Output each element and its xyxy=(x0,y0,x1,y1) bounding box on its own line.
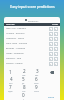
staticText: 8 xyxy=(23,84,26,90)
staticText: 1 xyxy=(50,33,52,36)
staticText: 1 xyxy=(55,48,57,51)
button[interactable]: Man Utd - Chelsea xyxy=(4,26,60,31)
staticText: Man Utd - Chelsea xyxy=(6,27,26,30)
button[interactable]: 9 xyxy=(30,84,43,92)
button[interactable]: 1 xyxy=(54,52,58,56)
button[interactable]: 2 xyxy=(17,68,30,76)
button[interactable]: Done xyxy=(43,92,60,100)
staticText: Easy input score predictions xyxy=(10,4,55,9)
staticText: 1 xyxy=(50,63,52,66)
staticText: 1 xyxy=(55,33,57,36)
button[interactable]: Watford - Villa xyxy=(4,56,60,61)
button[interactable]: Arsenal - Everton xyxy=(4,31,60,36)
staticText: Round 21 xyxy=(28,19,39,22)
staticText: 1 xyxy=(50,28,52,31)
button[interactable]: 1 xyxy=(4,68,17,76)
staticText: TUV xyxy=(22,90,26,92)
button[interactable]: Leeds - Brighton xyxy=(4,51,60,56)
button[interactable]: Backspace xyxy=(43,68,60,76)
button[interactable]: 1 xyxy=(49,62,53,66)
staticText: 1 xyxy=(50,43,52,46)
button[interactable]: 1 xyxy=(49,52,53,56)
staticText: 9 xyxy=(35,84,38,90)
staticText: Leeds - Brighton xyxy=(6,52,24,55)
staticText: 1 xyxy=(50,58,52,61)
button[interactable]: West Ham - Fulham xyxy=(4,41,60,46)
button[interactable]: 1 xyxy=(54,57,58,61)
staticText: 3 xyxy=(36,68,39,74)
staticText: West Ham - Fulham xyxy=(6,42,28,45)
staticText: + xyxy=(23,98,25,100)
staticText: 1 xyxy=(50,53,52,56)
staticText: DEF xyxy=(35,74,39,76)
button[interactable]: 1 xyxy=(54,47,58,51)
button[interactable]: Wolves - Palace xyxy=(4,61,60,66)
staticText: 1 xyxy=(55,53,57,56)
staticText: SCORE xyxy=(52,23,58,26)
button[interactable]: 7 xyxy=(4,84,17,92)
staticText: 1 xyxy=(55,28,57,31)
staticText: JKL xyxy=(22,82,25,84)
button[interactable]: 1 xyxy=(49,32,53,36)
staticText: 0 xyxy=(22,92,25,98)
staticText: 6 xyxy=(35,76,38,82)
button[interactable]: Burnley - Norwich xyxy=(4,46,60,51)
staticText: 1 xyxy=(55,38,57,41)
button[interactable]: 1 xyxy=(54,27,58,31)
staticText: Wolves - Palace xyxy=(6,62,23,65)
button[interactable]: 1 xyxy=(49,42,53,46)
button[interactable]: 5 xyxy=(17,76,30,84)
button[interactable]: 1 xyxy=(54,42,58,46)
staticText: 1 xyxy=(9,69,12,75)
staticText: 1 xyxy=(55,58,57,61)
button[interactable]: 1 xyxy=(49,37,53,41)
button[interactable]: 1 xyxy=(49,57,53,61)
staticText: 4 xyxy=(10,76,13,82)
button[interactable]: 1 xyxy=(49,27,53,31)
staticText: 1 xyxy=(55,43,57,46)
staticText: 7 xyxy=(9,84,12,90)
button[interactable]: 8 xyxy=(17,84,30,92)
staticText: 1 xyxy=(50,48,52,51)
button[interactable]: 1 xyxy=(54,32,58,36)
button[interactable]: Round 21 xyxy=(4,17,60,23)
staticText: Done xyxy=(48,95,55,98)
button[interactable]: Liverpool - Spurs xyxy=(4,36,60,41)
staticText: WXYZ xyxy=(34,90,39,92)
staticText: Burnley - Norwich xyxy=(6,47,26,50)
staticText: ABC xyxy=(22,74,26,76)
button[interactable]: 1 xyxy=(49,47,53,51)
button[interactable]: 1 xyxy=(54,37,58,41)
staticText: MATCHES xyxy=(6,23,15,26)
staticText: MNO xyxy=(34,82,39,84)
staticText: Watford - Villa xyxy=(6,57,22,60)
staticText: 1 xyxy=(50,38,52,41)
button[interactable]: 6 xyxy=(30,76,43,84)
staticText: PQRS xyxy=(8,90,13,92)
button[interactable]: 4 xyxy=(4,76,17,84)
button[interactable]: 3 xyxy=(30,68,43,76)
staticText: Arsenal - Everton xyxy=(6,32,25,35)
staticText: 1 xyxy=(55,63,57,66)
button[interactable]: 0 xyxy=(17,92,30,100)
staticText: Liverpool - Spurs xyxy=(6,37,25,40)
button[interactable]: 1 xyxy=(54,62,58,66)
staticText: GHI xyxy=(9,82,13,84)
staticText: 2 xyxy=(23,68,26,74)
staticText: 5 xyxy=(22,76,25,82)
